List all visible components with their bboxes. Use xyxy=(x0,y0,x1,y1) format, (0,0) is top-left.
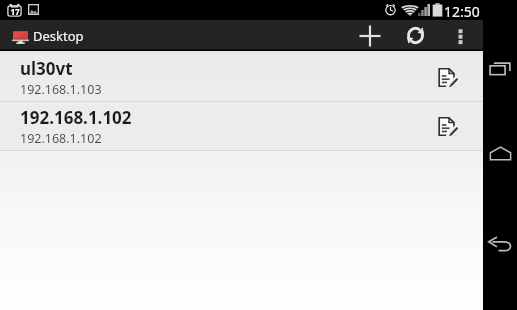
button[interactable]: Edit xyxy=(424,102,472,150)
button[interactable]: Edit xyxy=(424,53,472,101)
staticText: 12:50 xyxy=(444,2,480,20)
button[interactable]: Back xyxy=(483,196,517,292)
button[interactable]: Refresh xyxy=(393,20,438,51)
button[interactable]: More options xyxy=(438,20,483,51)
staticText: 192.168.1.103 xyxy=(20,81,102,98)
staticText: 192.168.1.102 xyxy=(20,130,102,147)
staticText: 17 xyxy=(10,6,20,17)
staticText: 192.168.1.102 xyxy=(20,106,132,129)
button[interactable]: 192.168.1.102 xyxy=(0,102,483,150)
button[interactable]: Add xyxy=(347,20,393,51)
button[interactable]: ul30vt xyxy=(0,51,483,101)
button[interactable]: Home xyxy=(483,110,517,196)
staticText: Desktop xyxy=(33,27,84,45)
staticText: ul30vt xyxy=(20,57,73,80)
button[interactable]: Recent apps xyxy=(483,24,517,110)
